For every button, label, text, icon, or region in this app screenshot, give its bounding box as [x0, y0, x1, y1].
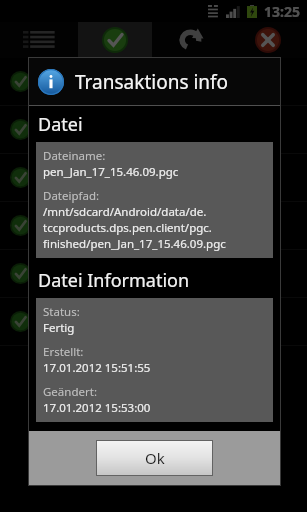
staticText: Transaktion — [42, 114, 103, 129]
staticText: Status: — [43, 304, 80, 320]
staticText: Erstellt: — [43, 344, 84, 360]
staticText: Fertig — [42, 179, 70, 193]
button[interactable]: Transaktion — [10, 202, 297, 249]
staticText: 17.01.2012 15:53:00 — [43, 400, 151, 416]
staticText: Transaktion — [42, 66, 103, 81]
staticText: Transaktions info — [75, 69, 229, 95]
button[interactable]: Transaktion — [10, 58, 297, 105]
button[interactable]: Ok — [97, 441, 212, 475]
staticText: pen_Jan_17_15.46.09.pgc — [43, 164, 179, 180]
staticText: Transaktion — [42, 162, 103, 177]
staticText: Fertig — [43, 320, 75, 336]
staticText: Dateiname: — [43, 148, 106, 164]
button[interactable]: Refresh — [152, 22, 229, 58]
button[interactable]: Accept — [78, 22, 152, 58]
staticText: Dateipfad: — [43, 188, 100, 204]
staticText: tccproducts.dps.pen.client/pgc. — [43, 220, 212, 236]
staticText: Datei — [38, 112, 83, 137]
staticText: /mnt/sdcard/Android/data/de. — [43, 204, 207, 220]
staticText: Geändert: — [43, 384, 97, 400]
staticText: Fertig — [42, 275, 70, 289]
button[interactable]: Transaktion — [10, 250, 297, 297]
button[interactable]: Transaktion — [10, 106, 297, 153]
button[interactable]: Transaktion — [10, 154, 297, 201]
staticText: Ok — [145, 448, 165, 468]
staticText: Fertig — [42, 227, 70, 241]
staticText: finished/pen_Jan_17_15.46.09.pgc — [43, 236, 226, 252]
staticText: Transaktion — [42, 306, 103, 321]
button[interactable]: Menu — [0, 22, 78, 58]
button[interactable]: Transaktion — [10, 298, 297, 345]
staticText: Fertig — [42, 323, 70, 337]
staticText: Fertig — [42, 83, 70, 97]
staticText: 13:25 — [264, 2, 300, 21]
staticText: Transaktion — [42, 210, 103, 225]
button[interactable]: Cancel — [229, 22, 307, 58]
staticText: 17.01.2012 15:51:55 — [43, 360, 151, 376]
staticText: Datei Information — [38, 268, 190, 293]
staticText: Fertig — [42, 131, 70, 145]
